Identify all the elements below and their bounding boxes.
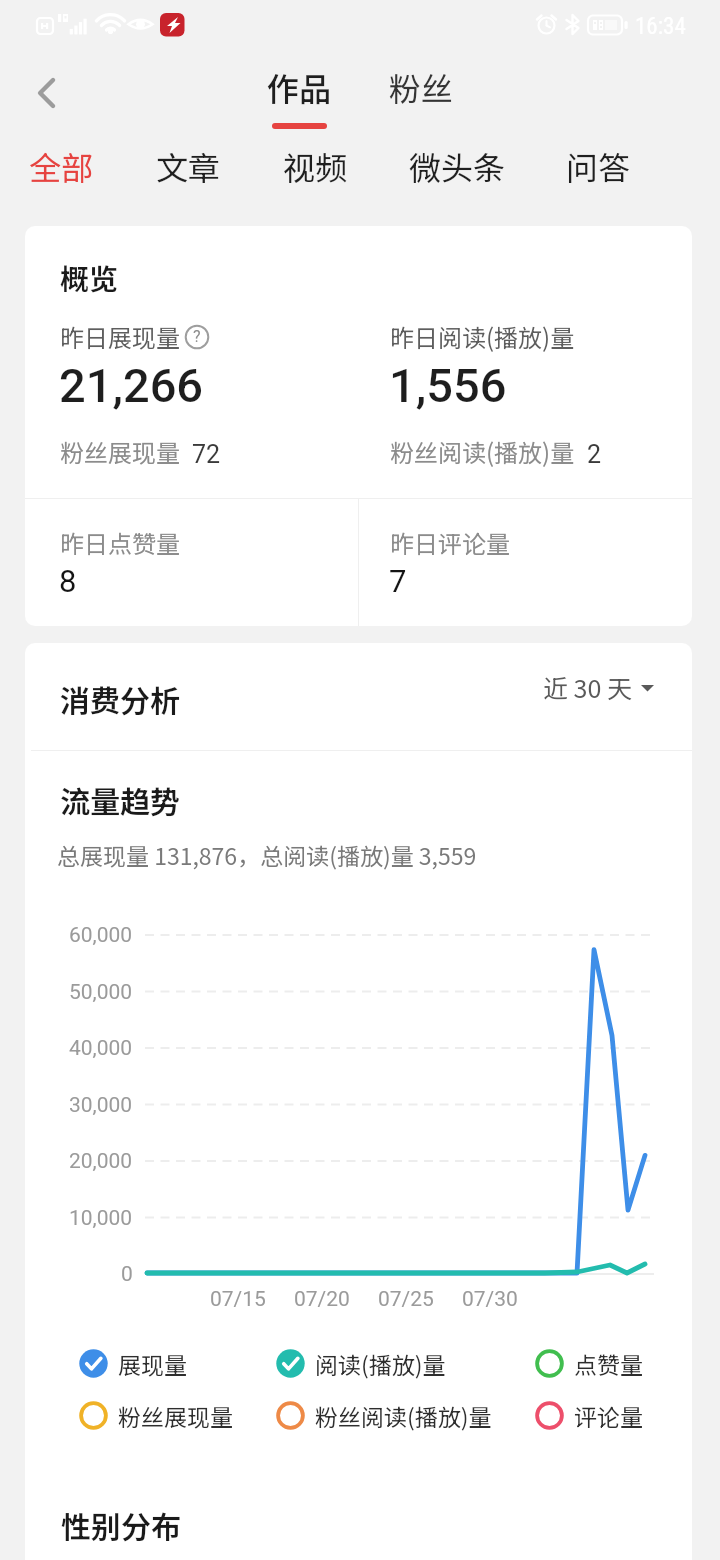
staticText: 72 xyxy=(192,440,221,469)
button[interactable]: 视频 xyxy=(278,130,352,202)
staticText: 概览 xyxy=(60,256,119,298)
button[interactable]: 昨日点赞量 xyxy=(25,498,358,626)
staticText: 阅读(播放)量 xyxy=(315,1347,446,1380)
button[interactable]: 评论量 xyxy=(535,1393,643,1437)
staticText: 粉丝展现量 xyxy=(118,1399,233,1432)
staticText: 40,000 xyxy=(69,1036,133,1061)
staticText: 性别分布 xyxy=(61,1503,181,1546)
button[interactable]: 问答 xyxy=(561,130,635,202)
button[interactable]: 粉丝展现量 xyxy=(79,1393,233,1437)
staticText: 10,000 xyxy=(69,1206,133,1231)
staticText: 作品 xyxy=(267,64,332,110)
staticText: 21,266 xyxy=(59,358,204,413)
staticText: 07/20 xyxy=(294,1287,350,1312)
staticText: 粉丝阅读(播放)量 xyxy=(390,434,575,469)
button[interactable]: 全部 xyxy=(24,130,98,202)
button[interactable]: 作品 xyxy=(250,54,348,132)
button[interactable]: Help xyxy=(185,325,209,349)
staticText: 点赞量 xyxy=(574,1347,643,1380)
button[interactable]: 微头条 xyxy=(404,130,510,202)
staticText: 问答 xyxy=(566,143,631,189)
staticText: 20,000 xyxy=(69,1149,133,1174)
button[interactable]: 昨日评论量 xyxy=(359,498,692,626)
staticText: 2 xyxy=(587,440,602,469)
staticText: 近 30 天 xyxy=(543,669,632,705)
staticText: 7 xyxy=(389,563,407,599)
button[interactable]: 阅读(播放)量 xyxy=(276,1341,446,1385)
staticText: ? xyxy=(193,327,201,346)
staticText: 昨日评论量 xyxy=(390,525,510,560)
staticText: 1,556 xyxy=(389,358,507,413)
staticText: 昨日阅读(播放)量 xyxy=(390,319,575,354)
staticText: 粉丝阅读(播放)量 xyxy=(315,1399,492,1432)
staticText: 流量趋势 xyxy=(60,778,180,821)
staticText: 视频 xyxy=(283,143,348,189)
staticText: 07/15 xyxy=(210,1287,266,1312)
staticText: 07/30 xyxy=(462,1287,518,1312)
staticText: 粉丝展现量 xyxy=(60,434,180,469)
staticText: 8 xyxy=(59,563,77,599)
button[interactable]: 文章 xyxy=(151,130,225,202)
staticText: 0 xyxy=(121,1262,133,1287)
staticText: 50,000 xyxy=(69,980,133,1005)
staticText: 评论量 xyxy=(574,1399,643,1432)
staticText: 16:34 xyxy=(635,13,686,40)
staticText: 60,000 xyxy=(69,923,133,948)
staticText: 全部 xyxy=(29,143,94,189)
button[interactable]: 粉丝阅读(播放)量 xyxy=(276,1393,492,1437)
button[interactable]: 点赞量 xyxy=(535,1341,643,1385)
staticText: 昨日点赞量 xyxy=(60,525,180,560)
staticText: 总展现量 131,876，总阅读(播放)量 3,559 xyxy=(57,838,477,871)
staticText: 消费分析 xyxy=(60,677,180,720)
button[interactable]: Back xyxy=(24,69,72,117)
staticText: 文章 xyxy=(156,143,221,189)
staticText: 30,000 xyxy=(69,1093,133,1118)
staticText: 展现量 xyxy=(118,1347,187,1380)
button[interactable]: 近 30 天 xyxy=(543,664,654,710)
staticText: 昨日展现量 xyxy=(60,319,180,354)
staticText: 微头条 xyxy=(409,143,506,189)
button[interactable]: 展现量 xyxy=(79,1341,187,1385)
staticText: 07/25 xyxy=(378,1287,434,1312)
staticText: 粉丝 xyxy=(389,64,454,110)
button[interactable]: 粉丝 xyxy=(372,54,470,132)
